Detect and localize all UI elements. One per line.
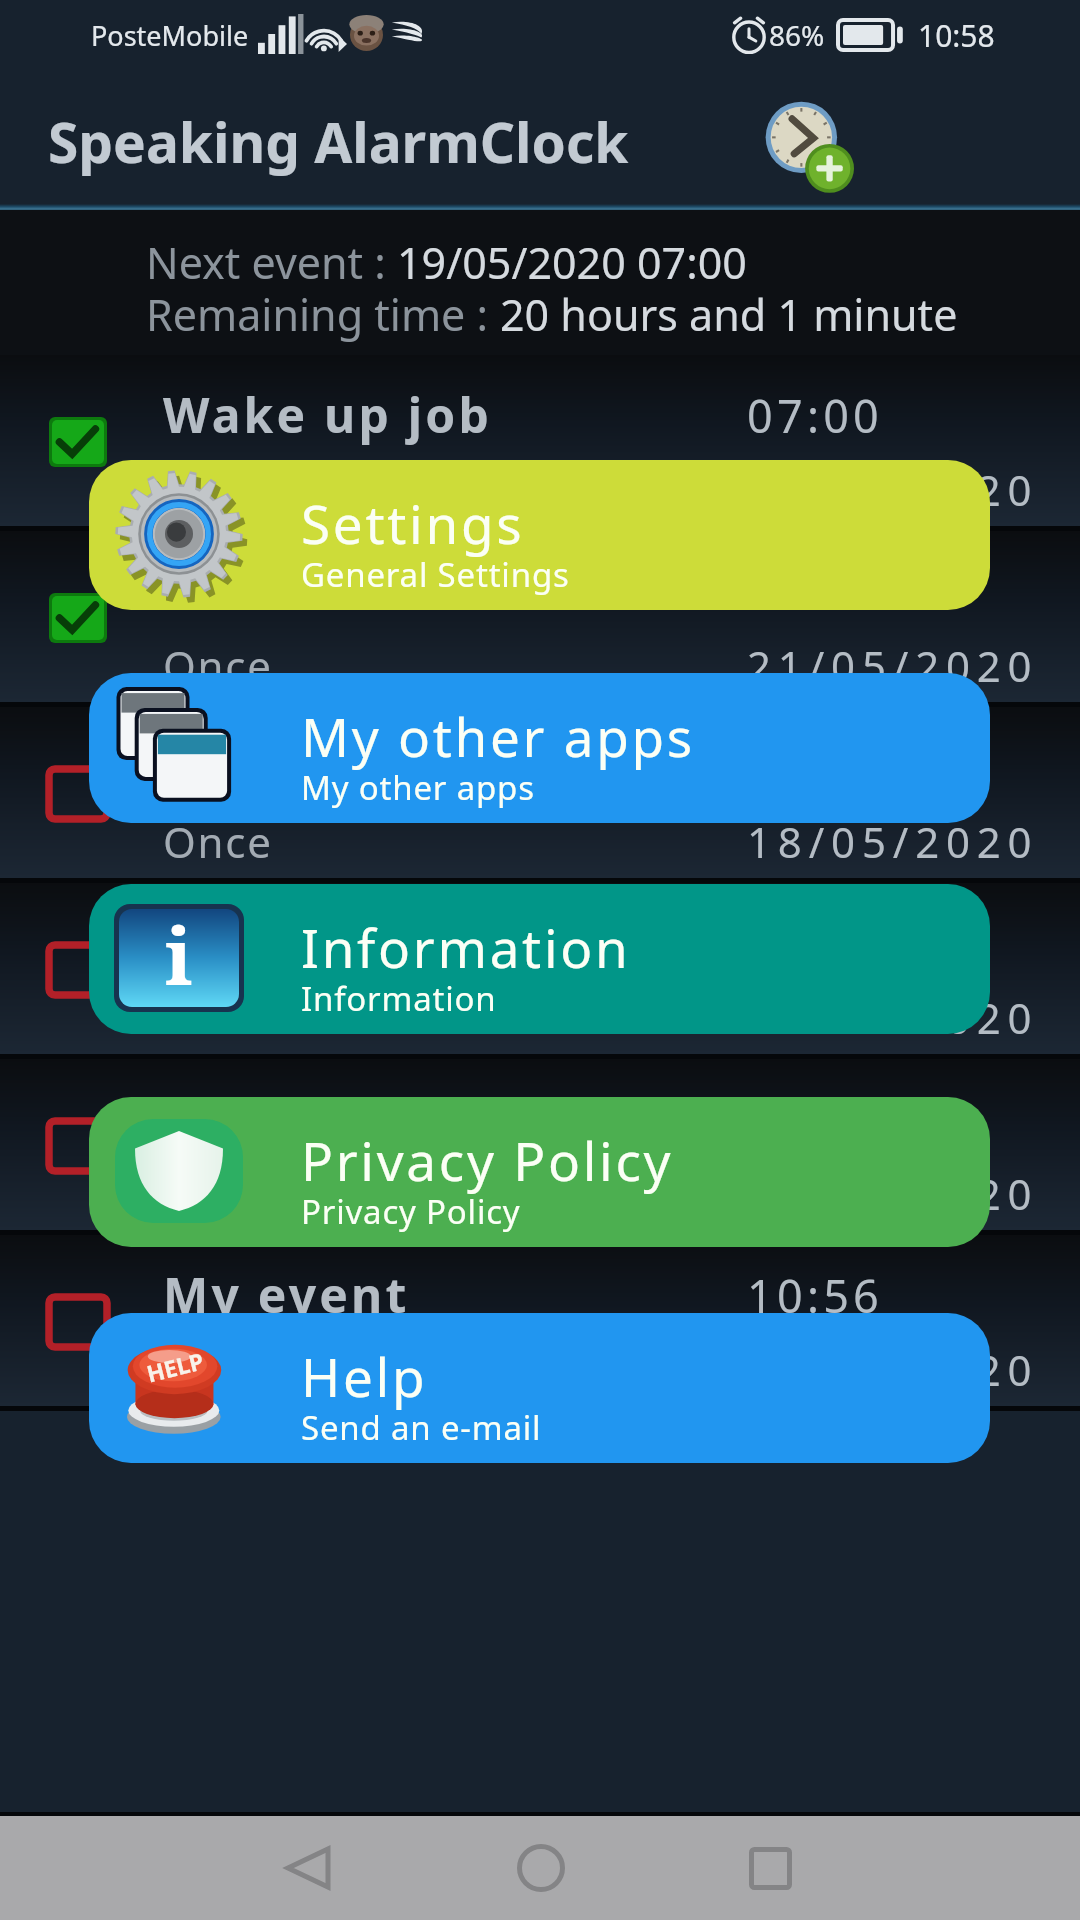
staticText: 23/05/2020 bbox=[747, 1341, 1039, 1398]
staticText: Shopping bbox=[163, 1086, 413, 1151]
staticText: 21/05/2020 bbox=[747, 637, 1039, 694]
button[interactable]: Call mum bbox=[0, 707, 1080, 878]
staticText: 07:00 bbox=[747, 385, 884, 446]
staticText: 18/05/2020 bbox=[747, 813, 1039, 870]
staticText: Once bbox=[163, 637, 273, 694]
staticText: PosteMobile bbox=[91, 17, 249, 54]
staticText: 22/05/2020 bbox=[747, 1165, 1039, 1222]
staticText: Information bbox=[301, 911, 631, 983]
button[interactable]: Privacy Policy bbox=[89, 1097, 990, 1247]
staticText: General Settings bbox=[301, 552, 570, 597]
staticText: My event bbox=[163, 1262, 410, 1327]
button[interactable]: Back bbox=[238, 1816, 378, 1920]
button[interactable]: My other apps bbox=[89, 673, 990, 823]
staticText: Settings bbox=[301, 487, 525, 559]
button[interactable]: Add alarm bbox=[760, 96, 854, 190]
staticText: Remaining time : bbox=[146, 285, 500, 344]
staticText: Once bbox=[163, 813, 273, 870]
staticText: 19/05/2020 07:00 bbox=[397, 233, 747, 292]
staticText: 19/05/2020 bbox=[747, 461, 1039, 518]
staticText: Information bbox=[301, 976, 497, 1021]
staticText: Once bbox=[163, 989, 273, 1046]
button[interactable]: HELP bbox=[89, 1313, 990, 1463]
staticText: Privacy Policy bbox=[301, 1124, 674, 1196]
staticText: Once bbox=[163, 1341, 273, 1398]
staticText: 08:30 bbox=[747, 561, 884, 622]
staticText: 18:45 bbox=[747, 1089, 884, 1150]
staticText: Wake up job bbox=[163, 382, 492, 447]
staticText: Medicine bbox=[163, 558, 407, 623]
staticText: Mon Tue Wed bbox=[163, 461, 453, 518]
button[interactable]: Medicine bbox=[0, 531, 1080, 702]
staticText: 20 hours and 1 minute bbox=[500, 285, 958, 344]
staticText: Privacy Policy bbox=[301, 1189, 521, 1234]
staticText: 10:58 bbox=[918, 15, 995, 56]
button[interactable]: Settings bbox=[89, 460, 990, 610]
staticText: 10:56 bbox=[747, 1265, 884, 1326]
button[interactable]: Shopping bbox=[0, 1059, 1080, 1230]
button[interactable]: Recents bbox=[700, 1816, 840, 1920]
staticText: Next event : bbox=[146, 233, 397, 292]
button[interactable]: i bbox=[89, 884, 990, 1034]
staticText: Speaking AlarmClock bbox=[48, 104, 629, 179]
staticText: My other apps bbox=[301, 700, 695, 772]
staticText: 20/05/2020 bbox=[747, 989, 1039, 1046]
button[interactable]: Wake up job bbox=[0, 355, 1080, 526]
staticText: Call mum bbox=[163, 734, 415, 799]
button[interactable]: My event bbox=[0, 1235, 1080, 1406]
staticText: Send an e-mail bbox=[301, 1405, 542, 1450]
staticText: 86% bbox=[769, 16, 825, 54]
staticText: Help bbox=[301, 1340, 428, 1412]
staticText: My other apps bbox=[301, 765, 535, 810]
staticText: Gym time bbox=[163, 910, 421, 975]
button[interactable]: Gym time bbox=[0, 883, 1080, 1054]
staticText: HELP bbox=[143, 1344, 207, 1388]
staticText: Once bbox=[163, 1165, 273, 1222]
staticText: i bbox=[165, 904, 193, 1008]
button[interactable]: Home bbox=[471, 1816, 611, 1920]
